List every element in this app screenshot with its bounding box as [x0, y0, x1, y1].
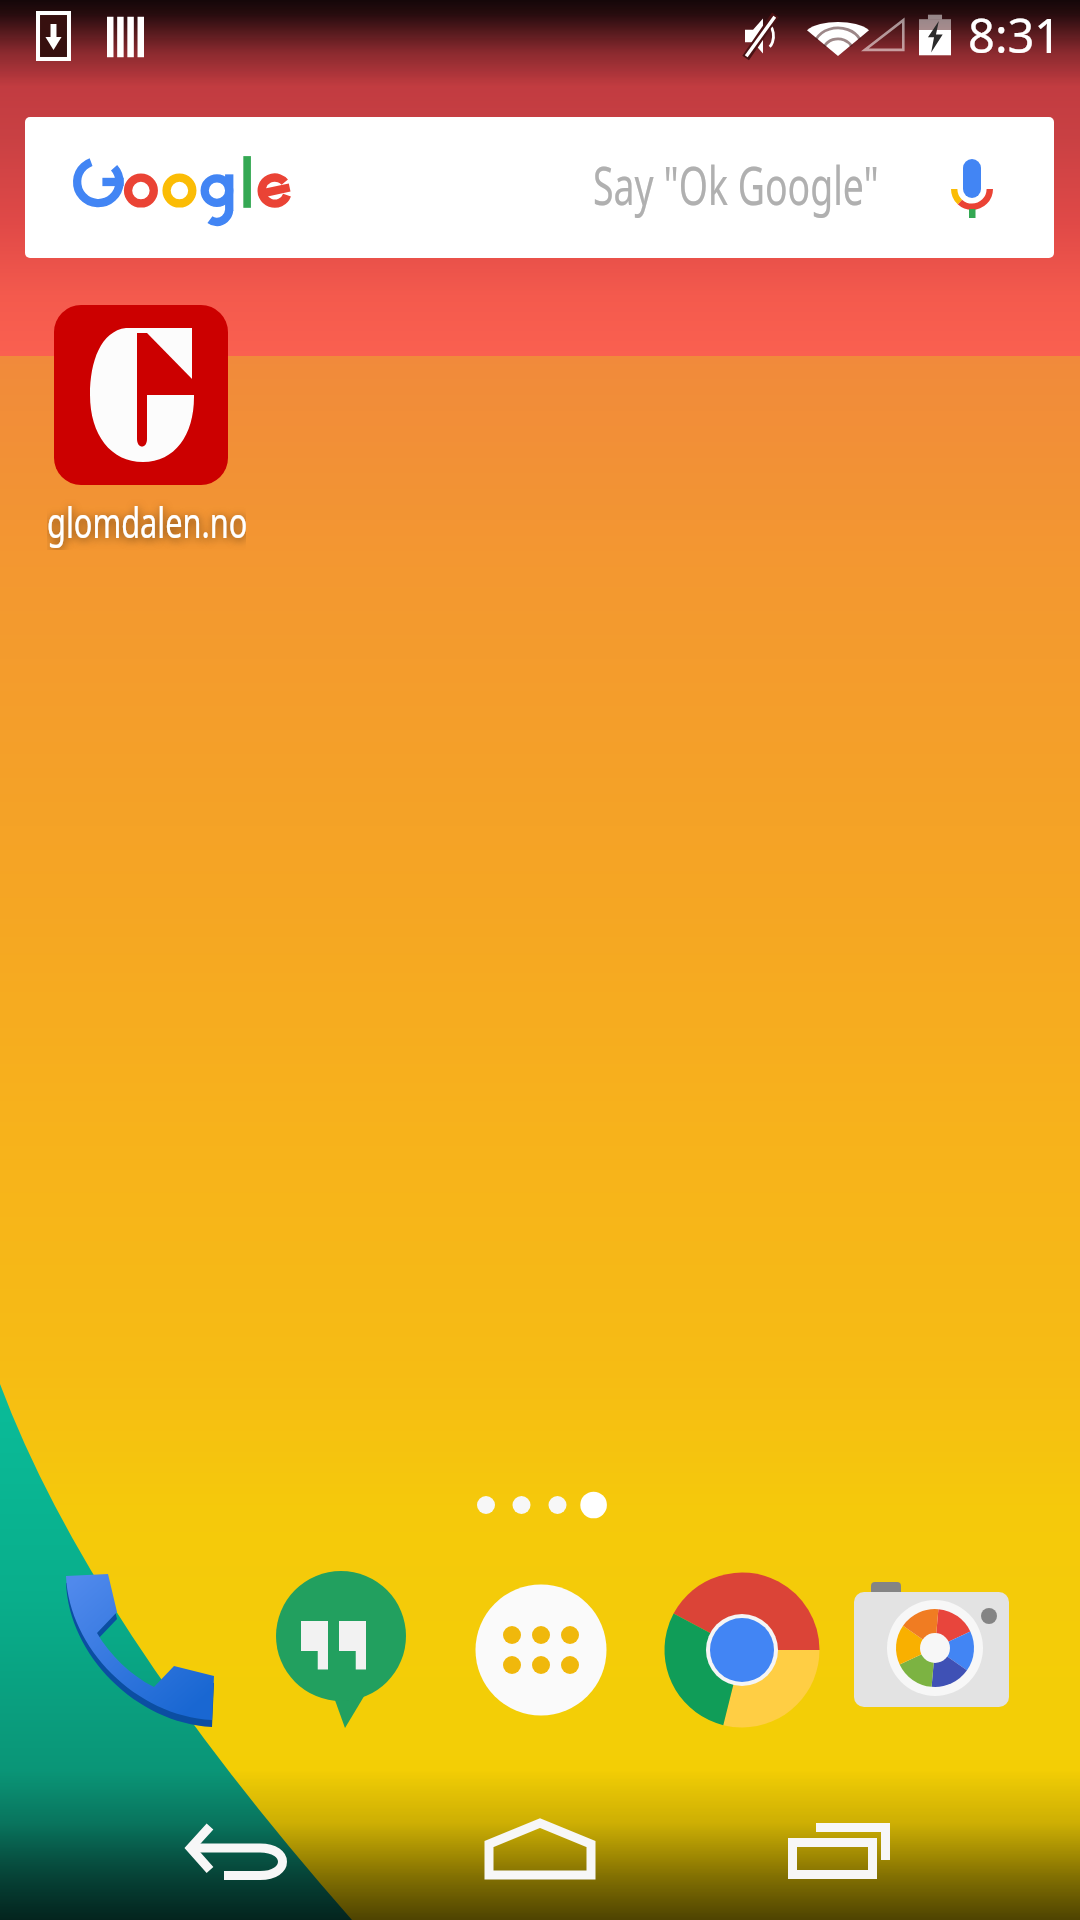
other: Voice search — [951, 159, 993, 218]
staticText: Say "Ok Google" — [593, 149, 880, 220]
button[interactable]: Chrome — [652, 1560, 832, 1740]
button[interactable]: Say "Ok Google" — [25, 117, 1054, 258]
button[interactable]: Hangouts — [251, 1560, 431, 1740]
button[interactable]: Back — [120, 1790, 360, 1920]
staticText: glomdalen.no — [47, 493, 246, 550]
button[interactable]: glomdalen.no — [8, 305, 280, 550]
button[interactable]: Home — [420, 1790, 660, 1920]
staticText: 8:31 — [968, 3, 1062, 67]
button[interactable]: Apps — [451, 1560, 631, 1740]
button[interactable]: Recents — [720, 1790, 960, 1920]
button[interactable]: Camera — [849, 1560, 1029, 1740]
button[interactable]: Phone — [50, 1560, 230, 1740]
